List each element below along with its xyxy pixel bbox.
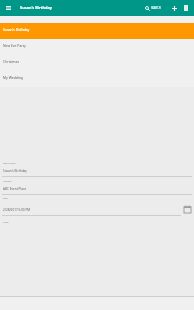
button[interactable]: Susan's Birthday <box>0 23 194 39</box>
button[interactable]: New Eve Party <box>0 39 194 55</box>
button[interactable]: Christmas <box>0 55 194 71</box>
staticText: Notes <box>3 221 9 224</box>
button[interactable]: Open navigation drawer <box>3 0 14 16</box>
button[interactable]: Add event <box>169 0 180 16</box>
staticText: ABC Event Place <box>3 187 27 191</box>
staticText: Event Name <box>3 162 16 165</box>
staticText: Christmas <box>3 59 20 64</box>
staticText: Susan's Birthday <box>20 5 53 10</box>
button[interactable]: More options <box>180 0 192 16</box>
staticText: My Wedding <box>3 75 23 80</box>
staticText: New Eve Party <box>3 43 26 48</box>
staticText: SEARCH <box>151 6 161 10</box>
button[interactable]: My Wedding <box>0 71 194 87</box>
button[interactable]: SEARCH <box>144 0 162 16</box>
staticText: 2/28/2017 6:00 PM <box>3 208 31 212</box>
staticText: Susan's Birthday <box>3 169 27 173</box>
button[interactable]: Pick date <box>183 204 192 213</box>
staticText: Location <box>3 180 12 183</box>
staticText: Susan's Birthday <box>3 27 30 32</box>
staticText: Date <box>3 197 8 200</box>
